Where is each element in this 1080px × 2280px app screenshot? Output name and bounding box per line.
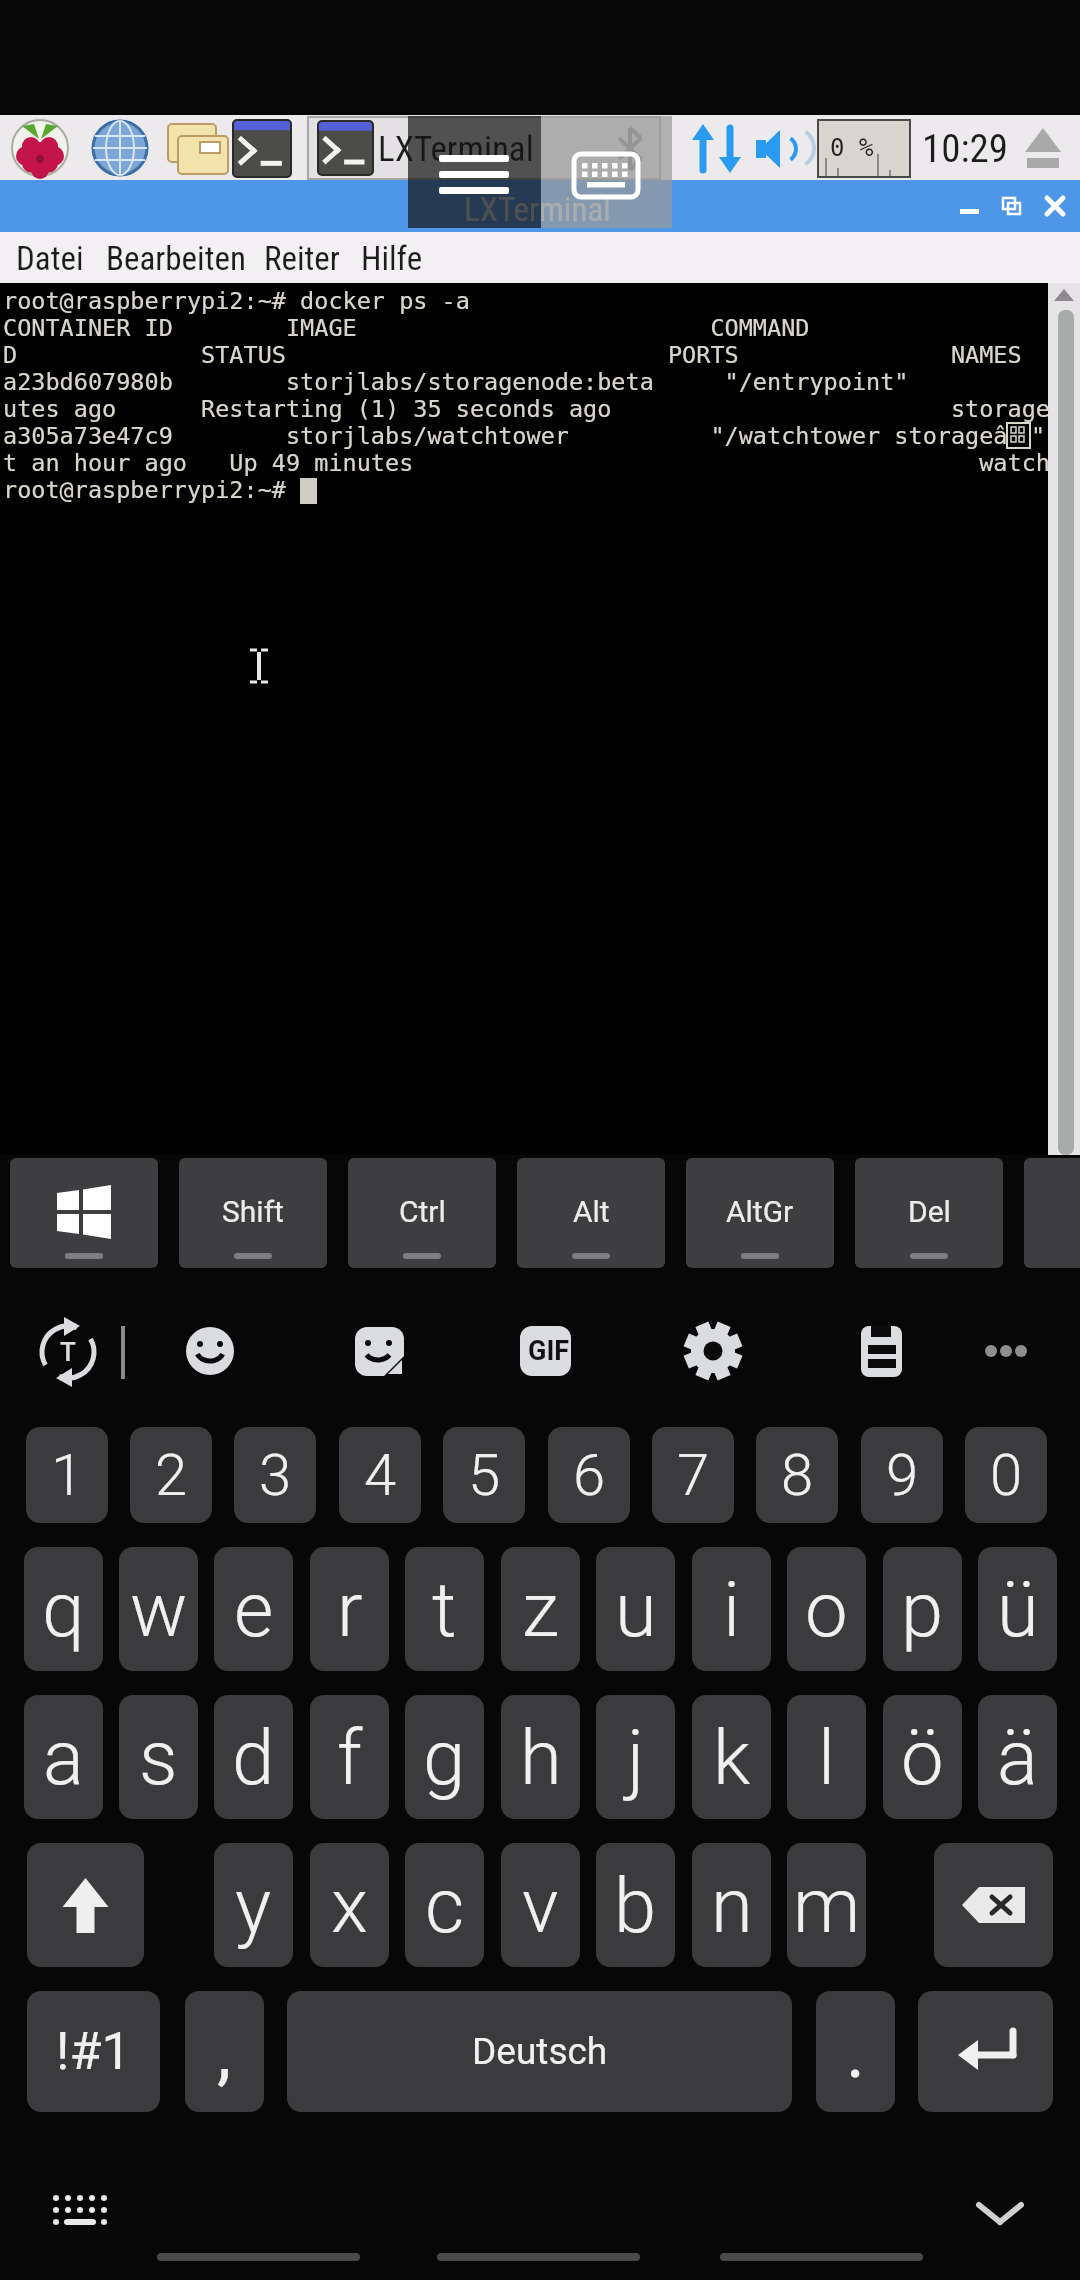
button[interactable] [849, 1320, 913, 1384]
button[interactable]: AltGr [686, 1158, 834, 1268]
staticText: n [711, 1861, 753, 1950]
button[interactable]: 0 [965, 1427, 1047, 1523]
staticText: utes ago Restarting (1) 35 seconds ago s… [3, 395, 1050, 422]
button[interactable] [36, 1320, 100, 1384]
button[interactable]: 2 [130, 1427, 212, 1523]
button[interactable]: 4 [339, 1427, 421, 1523]
button[interactable] [352, 232, 430, 282]
button[interactable]: g [405, 1695, 484, 1819]
button[interactable] [256, 232, 348, 282]
button[interactable]: 9 [861, 1427, 943, 1523]
button[interactable]: p [883, 1547, 962, 1671]
staticText: " [1031, 422, 1046, 449]
button[interactable]: ü [978, 1547, 1057, 1671]
button[interactable] [946, 190, 990, 228]
staticText: c [425, 1861, 465, 1950]
button[interactable]: k [692, 1695, 771, 1819]
button[interactable]: a [24, 1695, 103, 1819]
button[interactable] [92, 120, 148, 176]
button[interactable] [229, 118, 295, 178]
staticText: 1 [51, 1441, 84, 1509]
button[interactable]: Del [855, 1158, 1003, 1268]
button[interactable]: y [214, 1843, 293, 1967]
button[interactable]: d [214, 1695, 293, 1819]
button[interactable] [27, 1843, 144, 1967]
button[interactable]: i [692, 1547, 771, 1671]
staticText: 4 [364, 1441, 397, 1509]
button[interactable]: e [214, 1547, 293, 1671]
staticText: j [627, 1713, 645, 1802]
button[interactable] [44, 2186, 116, 2238]
button[interactable]: v [501, 1843, 580, 1967]
button[interactable]: 1 [26, 1427, 108, 1523]
button[interactable] [681, 1320, 745, 1384]
button[interactable]: m [787, 1843, 866, 1967]
staticText: a23bd607980b storjlabs/storagenode:beta … [3, 368, 909, 395]
button[interactable]: !#1 [27, 1991, 160, 2112]
button[interactable] [1048, 283, 1080, 1155]
button[interactable]: h [501, 1695, 580, 1819]
button[interactable]: 3 [234, 1427, 316, 1523]
button[interactable] [1038, 190, 1080, 228]
button[interactable]: Ctrl [348, 1158, 496, 1268]
button[interactable] [164, 118, 230, 178]
button[interactable]: Alt [517, 1158, 665, 1268]
staticText: k [713, 1713, 751, 1802]
staticText: 0 % [830, 134, 874, 162]
staticText: T [60, 1337, 76, 1367]
button[interactable]: , [185, 1991, 264, 2112]
button[interactable] [12, 120, 68, 176]
staticText: o [805, 1565, 848, 1654]
button[interactable] [974, 1320, 1038, 1384]
button[interactable]: u [596, 1547, 675, 1671]
button[interactable]: r [310, 1547, 389, 1671]
button[interactable] [513, 1320, 577, 1384]
button[interactable] [541, 116, 672, 228]
button[interactable]: ä [978, 1695, 1057, 1819]
staticText: z [522, 1565, 559, 1654]
button[interactable]: o [787, 1547, 866, 1671]
button[interactable]: w [119, 1547, 198, 1671]
button[interactable]: 8 [756, 1427, 838, 1523]
button[interactable]: 7 [652, 1427, 734, 1523]
staticText: Ctrl [399, 1194, 446, 1229]
button[interactable]: s [119, 1695, 198, 1819]
button[interactable] [10, 1158, 158, 1268]
button[interactable] [437, 2240, 640, 2272]
button[interactable]: 6 [548, 1427, 630, 1523]
staticText: d [232, 1713, 275, 1802]
button[interactable]: b [596, 1843, 675, 1967]
button[interactable]: f [310, 1695, 389, 1819]
button[interactable]: . [816, 1991, 895, 2112]
staticText: a [43, 1713, 84, 1802]
button[interactable] [968, 2190, 1032, 2238]
button[interactable] [308, 117, 660, 179]
button[interactable]: Shift [179, 1158, 327, 1268]
button[interactable]: q [24, 1547, 103, 1671]
staticText: v [522, 1861, 559, 1950]
button[interactable] [98, 232, 248, 282]
button[interactable]: Deutsch [287, 1991, 792, 2112]
button[interactable]: j [596, 1695, 675, 1819]
button[interactable]: ö [883, 1695, 962, 1819]
button[interactable] [720, 2240, 923, 2272]
button[interactable] [178, 1320, 242, 1384]
button[interactable] [348, 1320, 412, 1384]
button[interactable]: z [501, 1547, 580, 1671]
button[interactable]: n [692, 1843, 771, 1967]
staticText: h [520, 1713, 562, 1802]
button[interactable]: x [310, 1843, 389, 1967]
staticText: Deutsch [472, 2030, 608, 2073]
button[interactable]: l [787, 1695, 866, 1819]
staticText: x [331, 1861, 368, 1950]
button[interactable] [994, 190, 1038, 228]
button[interactable]: c [405, 1843, 484, 1967]
button[interactable] [157, 2240, 360, 2272]
button[interactable] [8, 232, 86, 282]
button[interactable]: t [405, 1547, 484, 1671]
button[interactable] [918, 1991, 1053, 2112]
button[interactable] [934, 1843, 1053, 1967]
button[interactable] [408, 116, 541, 228]
button[interactable]: 5 [443, 1427, 525, 1523]
